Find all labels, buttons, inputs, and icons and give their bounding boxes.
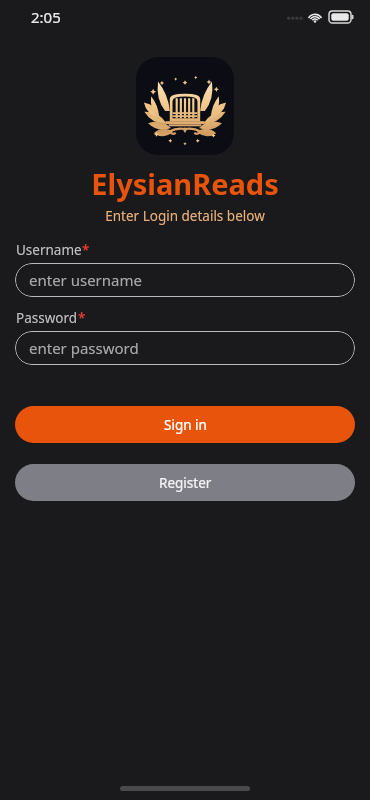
staticText: ElysianReads: [0, 164, 370, 203]
staticText: 2:05: [31, 7, 61, 27]
staticText: Password: [16, 309, 78, 327]
button[interactable]: enter username: [15, 263, 355, 297]
staticText: *: [82, 241, 90, 259]
staticText: Sign in: [164, 416, 207, 434]
staticText: enter password: [29, 338, 139, 358]
staticText: Register: [159, 474, 212, 492]
button[interactable]: Register: [15, 464, 355, 501]
staticText: *: [78, 309, 86, 327]
staticText: Username: [16, 241, 82, 259]
staticText: Enter Login details below: [0, 207, 370, 225]
button[interactable]: enter password: [15, 331, 355, 365]
staticText: enter username: [29, 270, 142, 290]
button[interactable]: Sign in: [15, 406, 355, 443]
